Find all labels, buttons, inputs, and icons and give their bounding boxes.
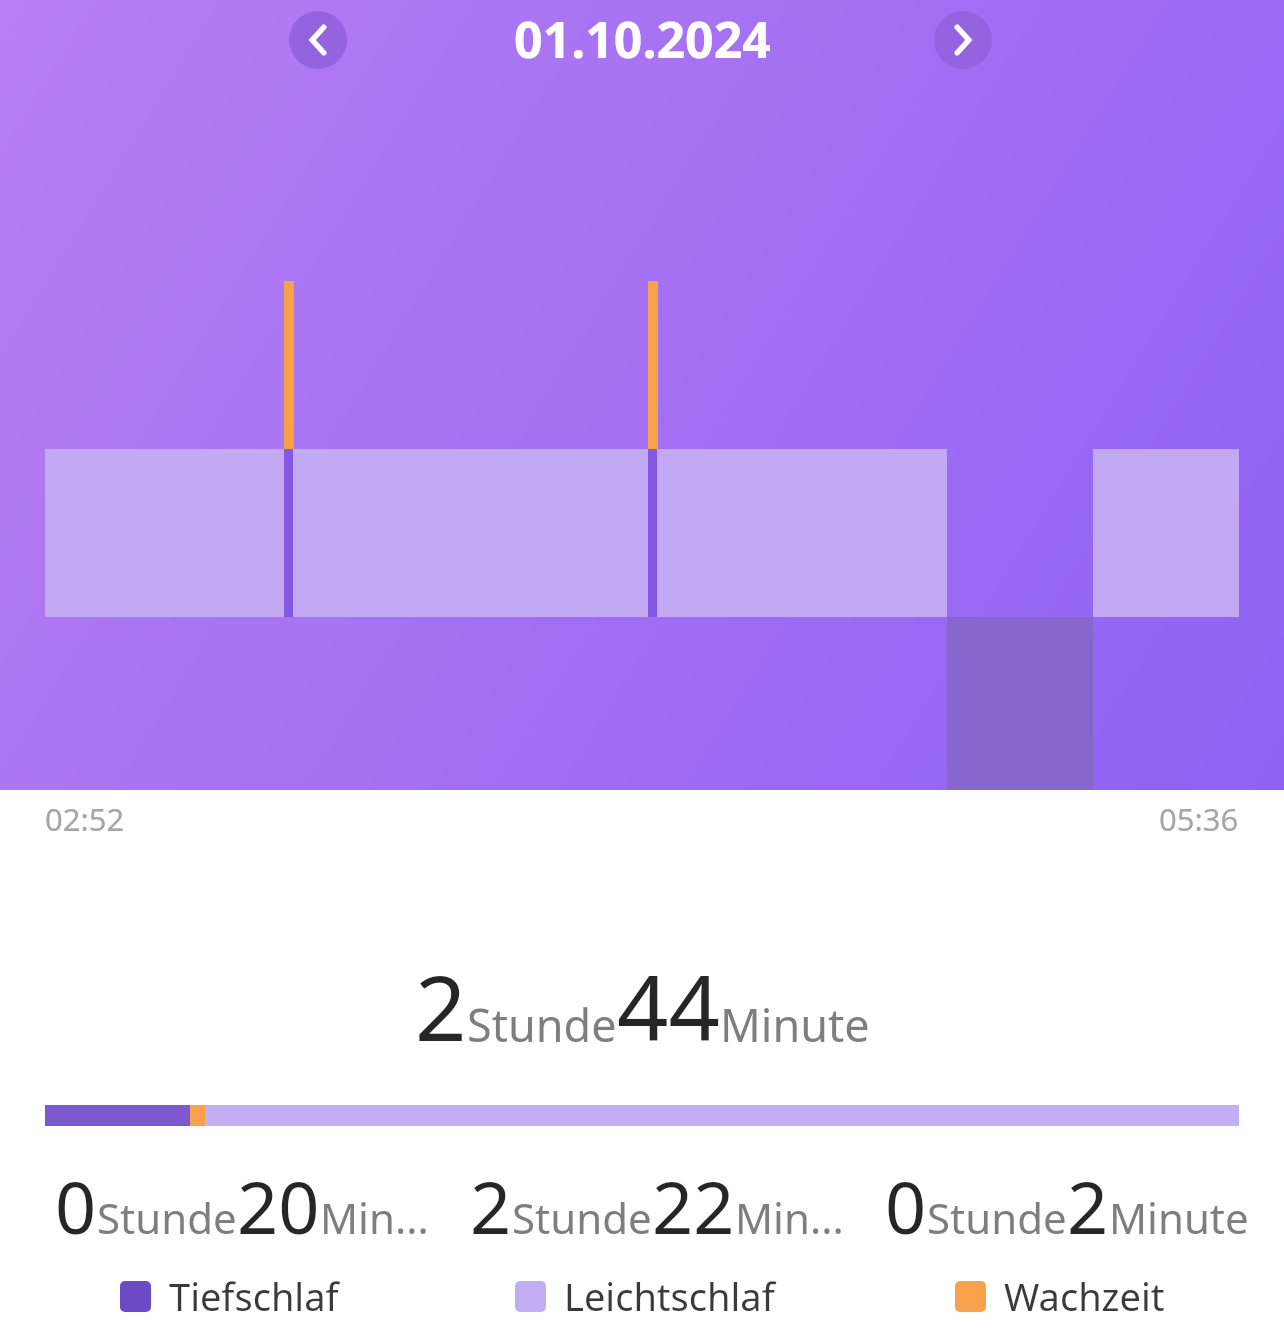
- button[interactable]: [934, 11, 992, 69]
- staticText: Leichtschlaf: [564, 1270, 775, 1322]
- staticText: Stunde: [97, 1189, 237, 1246]
- staticText: 2: [1067, 1157, 1109, 1255]
- staticText: Wachzeit: [1004, 1270, 1165, 1322]
- staticText: 01.10.2024: [514, 5, 771, 73]
- staticText: Minute: [1109, 1189, 1249, 1246]
- staticText: 02:52: [45, 798, 125, 840]
- staticText: 0: [885, 1157, 927, 1255]
- button[interactable]: [289, 11, 347, 69]
- staticText: Stunde: [467, 994, 617, 1055]
- staticText: 22: [652, 1157, 735, 1255]
- staticText: 05:36: [1159, 798, 1239, 840]
- staticText: Stunde: [512, 1189, 652, 1246]
- staticText: Min...: [735, 1189, 844, 1246]
- staticText: Min...: [320, 1189, 429, 1246]
- staticText: 20: [237, 1157, 320, 1255]
- staticText: Tiefschlaf: [169, 1270, 339, 1322]
- staticText: 44: [617, 945, 720, 1068]
- staticText: Stunde: [927, 1189, 1067, 1246]
- staticText: Minute: [720, 994, 870, 1055]
- staticText: 2: [415, 945, 467, 1068]
- staticText: 0: [55, 1157, 97, 1255]
- staticText: 2: [470, 1157, 512, 1255]
